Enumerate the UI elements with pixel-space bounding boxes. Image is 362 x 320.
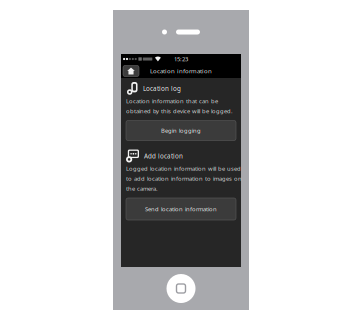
button[interactable]: Begin logging: [126, 120, 236, 140]
staticText: Add location: [144, 152, 183, 160]
staticText: Logged location information will be used: [126, 165, 241, 172]
staticText: 15:23: [174, 55, 188, 63]
staticText: Location information that can be: [126, 97, 218, 105]
staticText: Send location information: [145, 205, 217, 213]
button[interactable]: Send location information: [126, 198, 236, 220]
staticText: Location log: [143, 84, 181, 93]
button[interactable]: Home: [123, 65, 139, 76]
staticText: the camera.: [126, 185, 158, 192]
staticText: obtained by this device will be logged.: [126, 107, 233, 115]
staticText: Location information: [150, 67, 212, 75]
staticText: to add location information to images on: [126, 175, 242, 182]
staticText: Begin logging: [161, 127, 201, 134]
